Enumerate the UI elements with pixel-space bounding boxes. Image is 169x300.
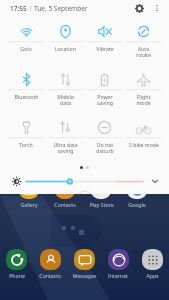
button[interactable]: Auto rotate bbox=[124, 18, 163, 59]
staticText: 17:55 bbox=[10, 4, 27, 13]
staticText: Torch bbox=[19, 141, 33, 148]
button[interactable]: Expand brightness bbox=[149, 175, 161, 187]
button[interactable]: Vibrate bbox=[85, 18, 124, 52]
staticText: Bluetooth bbox=[14, 93, 39, 100]
button[interactable]: S bike mode bbox=[124, 114, 163, 148]
button[interactable]: Gallery bbox=[10, 179, 47, 208]
button[interactable]: Do not disturb bbox=[85, 114, 124, 155]
staticText: Contacts bbox=[39, 272, 61, 279]
staticText: Messages bbox=[72, 272, 97, 279]
button[interactable]: Phone bbox=[0, 249, 33, 279]
button[interactable]: More options bbox=[151, 2, 163, 14]
button[interactable]: Torch bbox=[6, 114, 46, 148]
staticText: Gallery bbox=[20, 201, 38, 208]
button[interactable]: Flight mode bbox=[124, 66, 163, 107]
button[interactable]: Messages bbox=[67, 249, 101, 279]
staticText: Google bbox=[128, 201, 146, 208]
staticText: Apps bbox=[146, 272, 159, 279]
button[interactable]: Contacts bbox=[47, 179, 83, 208]
staticText: Golu bbox=[20, 45, 32, 52]
button[interactable]: Bluetooth bbox=[6, 66, 46, 100]
staticText: Location bbox=[55, 45, 76, 52]
staticText: Play Store bbox=[89, 201, 114, 208]
button[interactable]: Play Store bbox=[83, 179, 119, 208]
staticText: Power saving bbox=[97, 93, 113, 107]
staticText: Ultra data saving bbox=[53, 141, 78, 155]
staticText: Vibrate bbox=[96, 45, 114, 52]
staticText: Do not disturb bbox=[96, 141, 114, 155]
button[interactable]: Mobile data bbox=[46, 66, 85, 107]
button[interactable]: Google bbox=[119, 179, 155, 208]
button[interactable]: Power saving bbox=[85, 66, 124, 107]
button[interactable]: Contacts bbox=[33, 249, 67, 279]
button[interactable]: Settings bbox=[132, 1, 146, 15]
staticText: Tue, 5 September bbox=[34, 4, 88, 13]
staticText: Internet bbox=[108, 272, 128, 279]
button[interactable]: Golu bbox=[6, 18, 46, 52]
staticText: Flight mode bbox=[136, 93, 151, 107]
staticText: Contacts bbox=[54, 201, 76, 208]
button[interactable]: Ultra data saving bbox=[46, 114, 85, 155]
button[interactable]: Location bbox=[46, 18, 85, 52]
staticText: Mobile data bbox=[57, 93, 74, 107]
staticText: S bike mode bbox=[129, 141, 159, 148]
button[interactable]: Apps bbox=[135, 249, 169, 279]
button[interactable]: Internet bbox=[101, 249, 135, 279]
staticText: Auto rotate bbox=[136, 45, 151, 59]
staticText: Phone bbox=[9, 272, 25, 279]
